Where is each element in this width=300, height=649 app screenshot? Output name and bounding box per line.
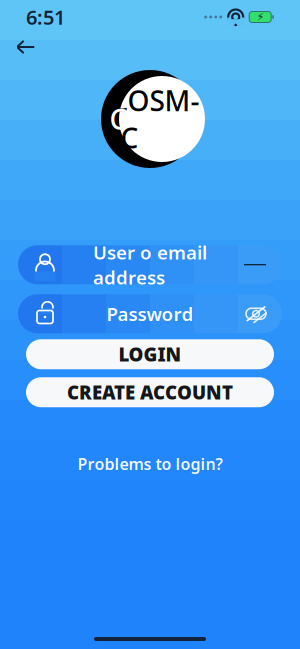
staticText: Password xyxy=(106,301,193,326)
staticText: CREATE ACCOUNT xyxy=(67,380,233,405)
staticText: LOGIN xyxy=(118,342,181,367)
button[interactable]: Problems to login? xyxy=(59,445,240,482)
staticText: User o email address xyxy=(93,240,207,290)
button[interactable]: CREATE ACCOUNT xyxy=(26,377,274,407)
staticText: C xyxy=(109,100,127,138)
staticText: COSMIC xyxy=(110,82,199,156)
button[interactable]: Password xyxy=(18,294,282,333)
button[interactable]: Back xyxy=(4,30,48,64)
staticText: 6:51 xyxy=(26,4,65,30)
button[interactable]: User o email address xyxy=(18,245,282,284)
button[interactable]: LOGIN xyxy=(26,339,274,369)
staticText: ⚡︎ xyxy=(257,11,264,23)
staticText: Problems to login? xyxy=(77,453,222,474)
